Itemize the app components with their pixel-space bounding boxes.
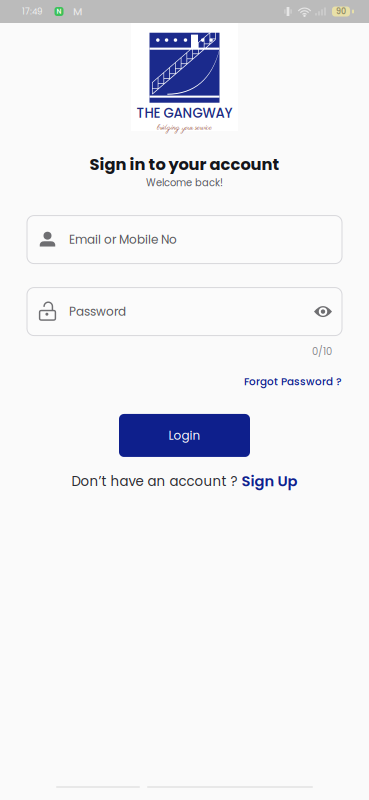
staticText: Login (168, 427, 200, 444)
staticText: Sign in to your account (89, 153, 279, 176)
staticText: 0/10 (312, 345, 332, 358)
button[interactable]: Login (119, 414, 250, 457)
staticText: Password (69, 303, 126, 320)
staticText: Email or Mobile No (69, 231, 177, 248)
button[interactable]: Forgot Password ? (244, 374, 342, 389)
staticText: M (73, 4, 82, 19)
staticText: THE GANGWAY (136, 104, 232, 122)
staticText: bridging your service (157, 122, 212, 133)
staticText: Welcome back! (146, 176, 223, 190)
staticText: Sign Up (241, 471, 297, 491)
button[interactable]: Sign Up (241, 471, 297, 491)
staticText: 17:49 (22, 5, 42, 17)
staticText: N (56, 7, 61, 16)
button[interactable]: Show password (304, 289, 342, 335)
staticText: 90 (336, 6, 346, 17)
staticText: Forgot Password ? (244, 374, 342, 389)
staticText: Don’t have an account ? (71, 472, 241, 491)
